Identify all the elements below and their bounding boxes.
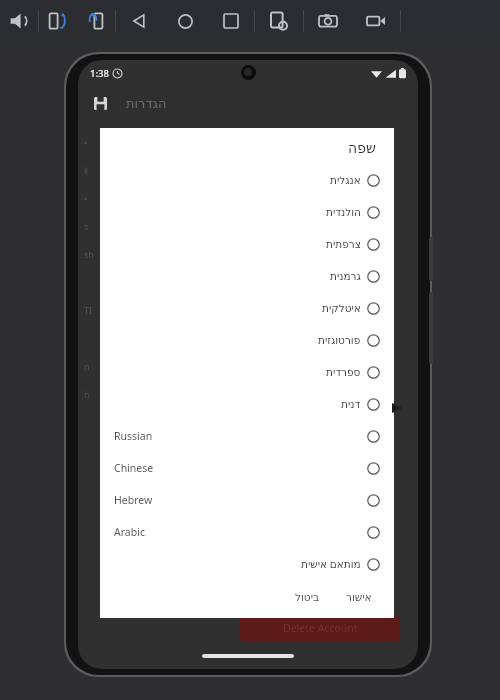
button[interactable]: Record screen: [352, 0, 400, 42]
staticText: Chinese: [114, 461, 154, 475]
button[interactable]: דנית: [100, 388, 394, 420]
staticText: Arabic: [114, 525, 145, 539]
button[interactable]: אישור: [338, 587, 380, 607]
button[interactable]: ביטול: [287, 587, 328, 607]
staticText: h: [84, 388, 90, 400]
staticText: n: [84, 360, 90, 372]
staticText: 1:38: [90, 67, 109, 80]
staticText: sh: [84, 248, 94, 260]
button[interactable]: Save: [88, 91, 112, 115]
button[interactable]: Screenshot: [304, 0, 352, 42]
button[interactable]: גרמנית: [100, 260, 394, 292]
button[interactable]: צרפתית: [100, 228, 394, 260]
staticText: s: [84, 220, 89, 232]
staticText: TI: [84, 304, 93, 316]
button[interactable]: Back: [116, 0, 162, 42]
staticText: Russian: [114, 429, 153, 443]
staticText: אנגלית: [330, 174, 361, 186]
button[interactable]: פורטוגזית: [100, 324, 394, 356]
staticText: ספרדית: [326, 366, 361, 378]
button[interactable]: ספרדית: [100, 356, 394, 388]
button[interactable]: הולנדית: [100, 196, 394, 228]
button[interactable]: Overview: [208, 0, 254, 42]
button[interactable]: Delete Account: [240, 615, 400, 641]
staticText: Delete Account: [283, 621, 358, 635]
staticText: ביטול: [295, 591, 320, 603]
staticText: איטלקית: [322, 302, 361, 314]
staticText: Hebrew: [114, 493, 153, 507]
button[interactable]: Hebrew: [100, 484, 394, 516]
button[interactable]: Volume: [0, 0, 38, 42]
staticText: מותאם אישית: [301, 557, 361, 571]
staticText: גרמנית: [330, 270, 361, 282]
button[interactable]: Chinese: [100, 452, 394, 484]
staticText: צרפתית: [326, 238, 361, 250]
button[interactable]: Home: [162, 0, 208, 42]
staticText: •: [84, 136, 88, 148]
button[interactable]: Settings: [255, 0, 303, 42]
staticText: הגדרות: [126, 96, 167, 111]
button[interactable]: Russian: [100, 420, 394, 452]
staticText: דנית: [341, 398, 361, 410]
button[interactable]: Arabic: [100, 516, 394, 548]
staticText: אישור: [346, 591, 372, 603]
staticText: הולנדית: [326, 206, 361, 218]
staticText: פורטוגזית: [318, 334, 361, 346]
button[interactable]: מותאם אישית: [100, 548, 394, 580]
button[interactable]: Rotate right: [77, 0, 115, 42]
button[interactable]: איטלקית: [100, 292, 394, 324]
button[interactable]: אנגלית: [100, 164, 394, 196]
staticText: שפה: [348, 140, 376, 156]
staticText: •: [84, 192, 88, 204]
button[interactable]: Rotate left: [39, 0, 77, 42]
staticText: k: [84, 164, 89, 176]
